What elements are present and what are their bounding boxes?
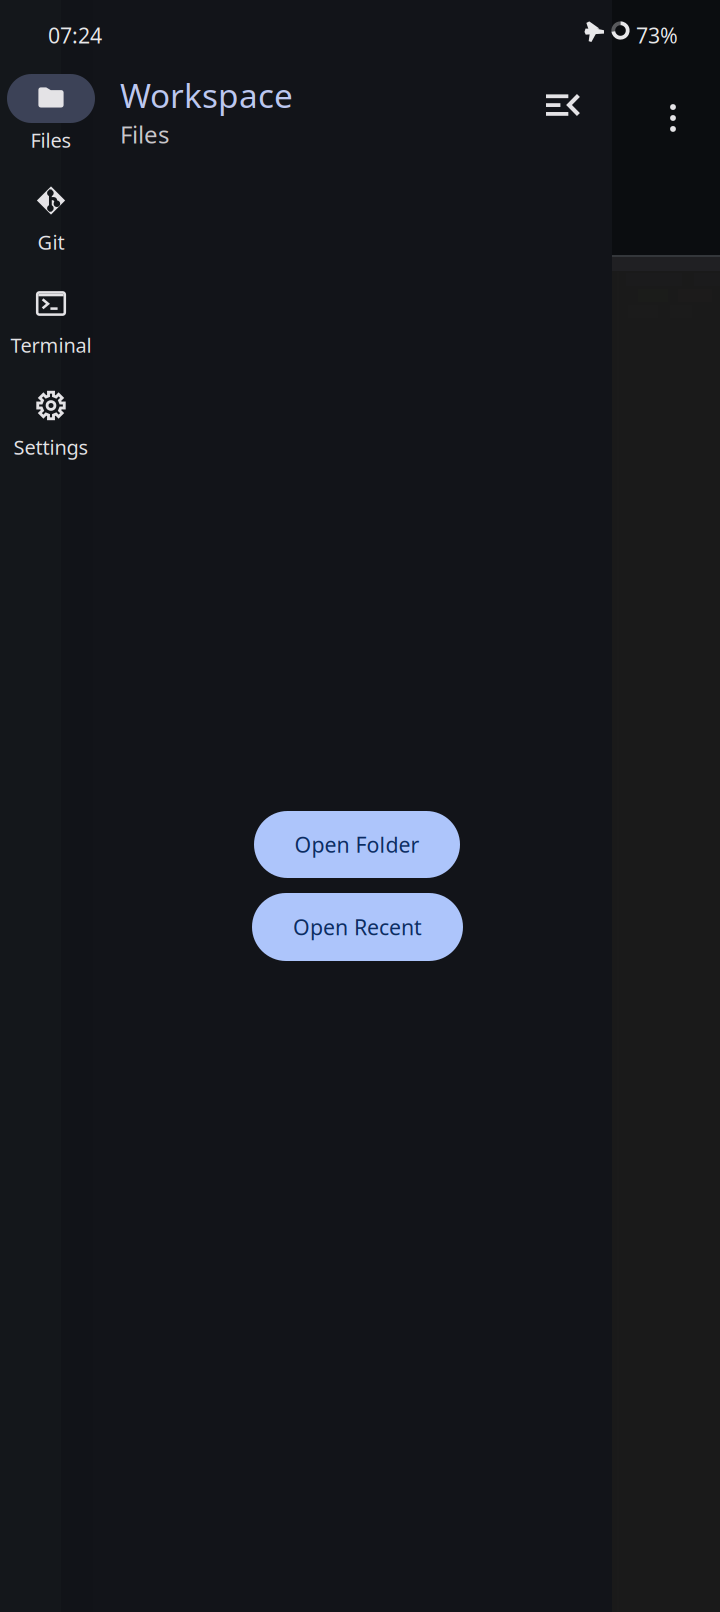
- staticText: Terminal: [10, 332, 91, 358]
- staticText: Files: [120, 118, 169, 150]
- staticText: Open Recent: [293, 913, 422, 941]
- staticText: Settings: [13, 434, 88, 460]
- button[interactable]: Git: [1, 176, 101, 268]
- staticText: Open Folder: [294, 830, 419, 859]
- button[interactable]: Open Recent: [252, 893, 463, 961]
- button[interactable]: Terminal: [1, 279, 101, 371]
- staticText: Git: [37, 229, 64, 255]
- button[interactable]: Open Folder: [254, 811, 460, 878]
- staticText: Workspace: [120, 73, 293, 117]
- button[interactable]: Files: [1, 74, 101, 166]
- button[interactable]: More options: [645, 90, 701, 146]
- staticText: Files: [30, 127, 71, 153]
- button[interactable]: Collapse navigation: [533, 74, 595, 136]
- staticText: 07:24: [48, 21, 102, 49]
- button[interactable]: Settings: [1, 381, 101, 473]
- staticText: 73%: [636, 21, 678, 49]
